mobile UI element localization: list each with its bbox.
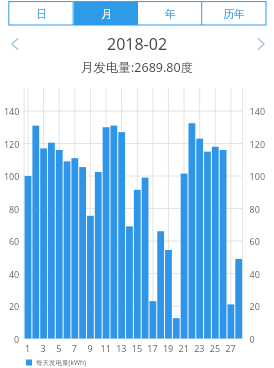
button[interactable]: 年 [138, 2, 202, 25]
staticText: 年 [165, 7, 176, 21]
staticText: 2018-02 [107, 33, 168, 55]
staticText: 日 [36, 7, 47, 21]
button[interactable]: 日 [9, 2, 74, 25]
button[interactable]: 月 [74, 2, 138, 25]
button[interactable]: Previous month [5, 34, 25, 54]
staticText: 月发电量:2689.80度 [81, 59, 194, 76]
staticText: 历年 [223, 7, 245, 21]
staticText: 月 [101, 7, 112, 21]
button[interactable]: Next month [251, 34, 271, 54]
button[interactable]: 历年 [202, 2, 266, 25]
